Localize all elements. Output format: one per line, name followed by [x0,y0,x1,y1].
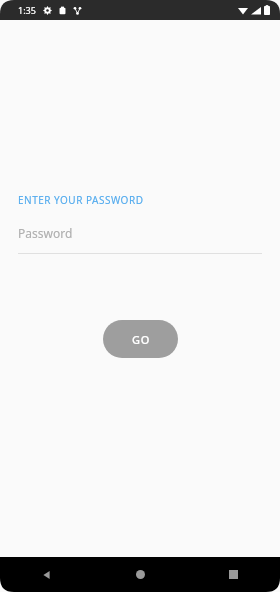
button[interactable]: Home [94,557,187,592]
staticText: Password [18,225,73,241]
staticText: 1:35 [18,4,36,16]
button[interactable]: Recent apps [187,557,280,592]
button[interactable]: Password [18,225,262,254]
button[interactable]: GO [103,320,178,358]
staticText: GO [132,332,150,347]
staticText: ENTER YOUR PASSWORD [18,193,144,207]
button[interactable]: Back [0,557,94,592]
